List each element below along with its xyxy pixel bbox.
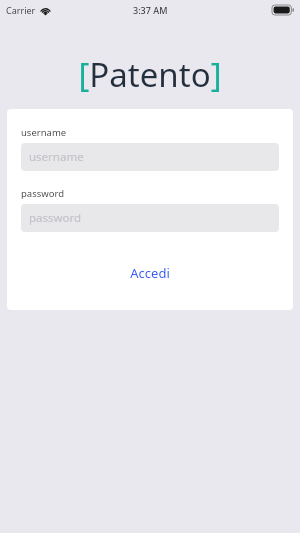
staticText: password (29, 210, 82, 226)
staticText: Carrier (6, 4, 36, 16)
staticText: [Patento] (0, 52, 300, 97)
staticText: password (21, 187, 65, 200)
staticText: 3:37 AM (133, 4, 168, 16)
staticText: username (29, 149, 84, 165)
button[interactable]: Accedi (21, 258, 279, 288)
button[interactable]: username (21, 143, 279, 171)
staticText: Accedi (21, 264, 279, 282)
button[interactable]: password (21, 204, 279, 232)
staticText: username (21, 126, 67, 139)
